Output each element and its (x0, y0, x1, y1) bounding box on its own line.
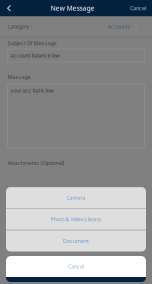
staticText: Accounts (107, 23, 130, 30)
staticText: Attachments (Optional) (7, 159, 64, 167)
staticText: account balance low (10, 52, 59, 59)
staticText: Cancel (68, 263, 84, 270)
staticText: Camera (66, 194, 85, 201)
staticText: Category : (7, 23, 31, 30)
staticText: Document (63, 237, 89, 245)
staticText: Photo & Video Library (50, 216, 101, 223)
button[interactable]: Cancel (6, 256, 146, 282)
staticText: Subject Of Message (7, 40, 56, 47)
staticText: your acc bal is low (10, 87, 53, 94)
staticText: New Message (50, 4, 94, 13)
button[interactable]: Cancel (129, 0, 147, 16)
button[interactable]: Back (2, 0, 16, 16)
staticText: Cancel (130, 5, 146, 12)
button[interactable]: Camera (6, 187, 146, 208)
button[interactable]: Photo & Video Library (6, 209, 146, 230)
button[interactable]: Document (6, 230, 146, 251)
staticText: Message (7, 73, 30, 81)
button[interactable]: Category : (0, 16, 152, 36)
